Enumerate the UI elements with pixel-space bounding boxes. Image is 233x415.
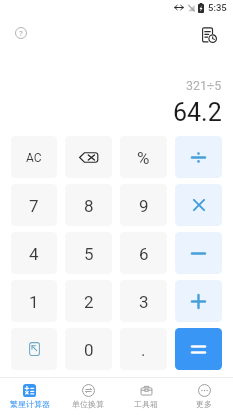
button[interactable]: . [120, 328, 167, 370]
staticText: 3 [139, 292, 149, 312]
staticText: 321÷5 [186, 78, 222, 93]
button[interactable]: 1 [11, 280, 57, 322]
button[interactable]: 更多 [175, 378, 233, 415]
staticText: 7 [29, 196, 39, 216]
staticText: 64.2 [173, 98, 222, 127]
button[interactable]: Delete [65, 136, 112, 178]
button[interactable]: 单位换算 [59, 378, 117, 415]
staticText: ? [19, 29, 23, 38]
button[interactable]: Divide [175, 136, 222, 178]
button[interactable]: Help [9, 21, 33, 45]
staticText: 4 [29, 244, 39, 264]
staticText: 工具箱 [134, 399, 158, 409]
button[interactable]: History [197, 23, 221, 47]
button[interactable]: Multiply [175, 184, 222, 226]
staticText: 0 [84, 340, 94, 360]
button[interactable]: 5 [65, 232, 112, 274]
staticText: 更多 [196, 399, 212, 409]
button[interactable]: Add [175, 280, 222, 322]
staticText: 6 [139, 244, 149, 264]
button[interactable]: 8 [65, 184, 112, 226]
button[interactable]: 工具箱 [117, 378, 175, 415]
staticText: 繁星计算器 [10, 399, 50, 409]
button[interactable]: 9 [120, 184, 167, 226]
button[interactable]: % [120, 136, 167, 178]
button[interactable]: 0 [65, 328, 112, 370]
button[interactable]: Equals [175, 328, 222, 370]
button[interactable]: 3 [120, 280, 167, 322]
staticText: 1 [29, 292, 39, 312]
staticText: 5 [84, 244, 94, 264]
button[interactable]: 7 [11, 184, 57, 226]
button[interactable]: AC [11, 136, 57, 178]
staticText: 5:35 [208, 2, 227, 13]
button[interactable]: Subtract [175, 232, 222, 274]
button[interactable]: 繁星计算器 [0, 378, 59, 415]
staticText: AC [26, 151, 42, 165]
staticText: . [141, 340, 146, 360]
button[interactable]: 6 [120, 232, 167, 274]
button[interactable]: Expand [11, 328, 57, 370]
staticText: 2 [84, 292, 94, 312]
staticText: 9 [139, 196, 149, 216]
staticText: 8 [84, 196, 94, 216]
staticText: % [137, 148, 150, 168]
staticText: 单位换算 [72, 399, 104, 409]
button[interactable]: 2 [65, 280, 112, 322]
button[interactable]: 4 [11, 232, 57, 274]
